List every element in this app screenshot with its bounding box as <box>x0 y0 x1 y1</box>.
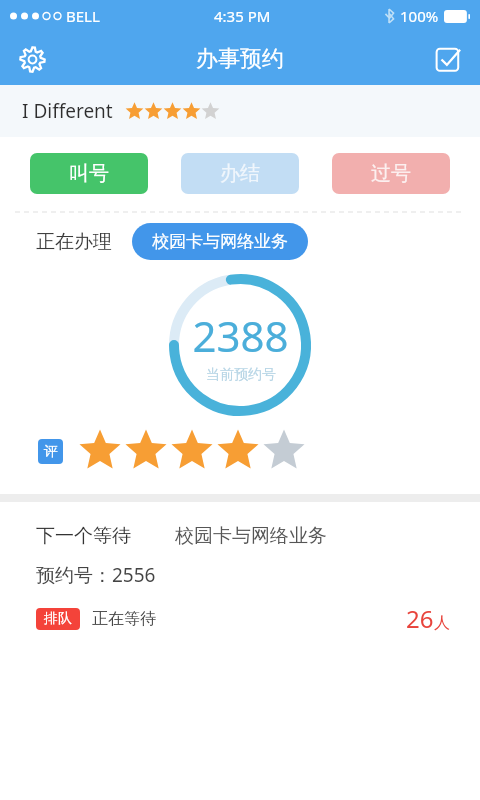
staticText: BELL <box>66 6 100 26</box>
button[interactable]: 叫号 <box>30 153 148 194</box>
staticText: 校园卡与网络业务 <box>152 231 288 252</box>
staticText: 过号 <box>371 161 411 186</box>
staticText: I Different <box>22 98 113 124</box>
staticText: 2388 <box>192 307 289 364</box>
staticText: 叫号 <box>69 161 109 186</box>
staticText: 人 <box>434 613 450 633</box>
button[interactable]: Confirm <box>426 37 470 81</box>
button[interactable]: Rate 5 stars <box>261 428 307 474</box>
button[interactable]: 办结 <box>181 153 299 194</box>
staticText: 26 <box>406 602 434 635</box>
staticText: 当前预约号 <box>206 366 276 384</box>
button[interactable]: 过号 <box>332 153 450 194</box>
staticText: 下一个等待 <box>36 524 131 548</box>
staticText: 办结 <box>220 161 260 186</box>
button[interactable]: Rate 4 stars <box>215 428 261 474</box>
staticText: 正在办理 <box>36 230 112 254</box>
staticText: 评 <box>44 443 58 461</box>
staticText: 正在等待 <box>92 609 156 629</box>
staticText: 办事预约 <box>196 45 284 73</box>
button[interactable]: Rate 1 stars <box>77 428 123 474</box>
staticText: 校园卡与网络业务 <box>175 524 327 548</box>
button[interactable]: 校园卡与网络业务 <box>132 223 308 260</box>
button[interactable]: Settings <box>10 37 54 81</box>
button[interactable]: 评 <box>38 439 63 464</box>
staticText: 4:35 PM <box>214 6 271 26</box>
button[interactable]: Rate 2 stars <box>123 428 169 474</box>
staticText: 预约号：2556 <box>36 562 156 588</box>
staticText: 100% <box>400 6 439 26</box>
button[interactable]: Rate 3 stars <box>169 428 215 474</box>
staticText: 排队 <box>44 610 72 628</box>
